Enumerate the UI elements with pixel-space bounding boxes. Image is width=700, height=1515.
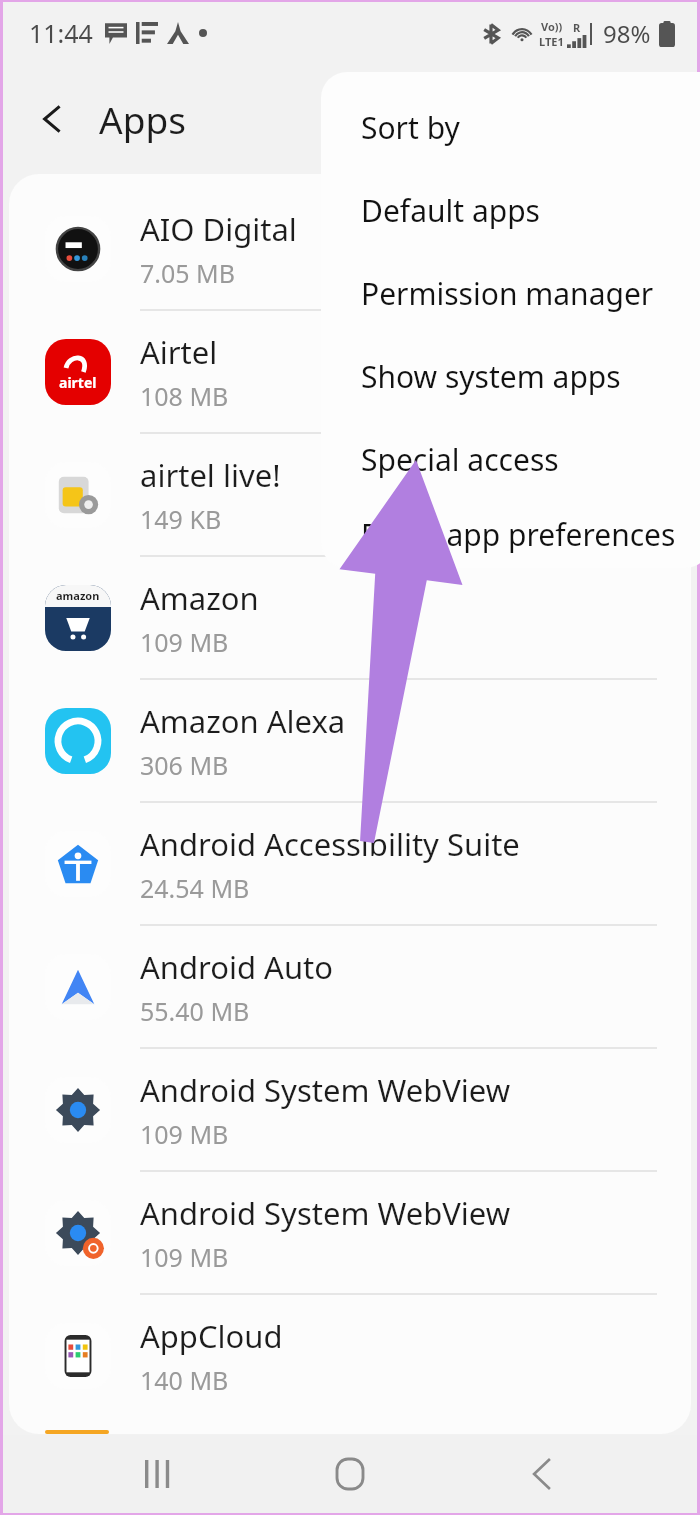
button[interactable]: AppCloud [9, 1295, 691, 1416]
staticText: Special access [361, 439, 559, 480]
button[interactable]: Reset app preferences [321, 501, 700, 568]
button[interactable]: Home [313, 1437, 387, 1511]
staticText: Sort by [361, 107, 460, 148]
staticText: Android Accessibility Suite [140, 823, 520, 865]
staticText: 109 MB [140, 1117, 229, 1151]
button[interactable]: amazon [9, 557, 691, 678]
button[interactable]: AIO Digital [9, 188, 691, 309]
staticText: 140 MB [140, 1363, 229, 1397]
staticText: Android Auto [140, 946, 334, 988]
staticText: 306 MB [140, 748, 229, 782]
staticText: Android System WebView [140, 1192, 511, 1234]
staticText: Vo)) [541, 19, 563, 34]
button[interactable]: airtel live! [9, 434, 691, 555]
button[interactable]: Android Auto [9, 926, 691, 1047]
staticText: 109 MB [140, 625, 229, 659]
staticText: airtel live! [140, 454, 281, 496]
button[interactable]: Android System WebView [9, 1049, 691, 1170]
staticText: Show system apps [361, 356, 621, 397]
button[interactable]: Back [25, 91, 81, 147]
button[interactable]: airtel [9, 311, 691, 432]
button[interactable]: Recents [121, 1437, 195, 1511]
button[interactable]: Sort by [321, 86, 700, 169]
staticText: 7.05 MB [140, 256, 236, 290]
staticText: Amazon Alexa [140, 700, 346, 742]
button[interactable]: Android Accessibility Suite [9, 803, 691, 924]
button[interactable]: Show system apps [321, 335, 700, 418]
staticText: amazon [56, 588, 100, 603]
staticText: AIO Digital [140, 208, 297, 250]
staticText: LTE1 [539, 34, 564, 49]
button[interactable]: Default apps [321, 169, 700, 252]
staticText: 149 KB [140, 502, 222, 536]
staticText: 108 MB [140, 379, 229, 413]
staticText: 55.40 MB [140, 994, 250, 1028]
button[interactable]: Permission manager [321, 252, 700, 335]
staticText: 109 MB [140, 1240, 229, 1274]
staticText: Default apps [361, 190, 540, 231]
staticText: R [573, 20, 581, 35]
staticText: Airtel [140, 331, 218, 373]
staticText: Reset app preferences [361, 514, 676, 555]
staticText: Android System WebView [140, 1069, 511, 1111]
staticText: AppCloud [140, 1315, 283, 1357]
button[interactable]: Amazon Alexa [9, 680, 691, 801]
button[interactable]: Android System WebView [9, 1172, 691, 1293]
staticText: airtel [59, 373, 97, 392]
staticText: Amazon [140, 577, 259, 619]
staticText: Permission manager [361, 273, 654, 314]
button[interactable]: Special access [321, 418, 700, 501]
staticText: 11:44 [29, 16, 93, 50]
staticText: 98% [603, 17, 651, 50]
staticText: Apps [99, 94, 186, 144]
staticText: 24.54 MB [140, 871, 250, 905]
button[interactable]: Back [505, 1437, 579, 1511]
